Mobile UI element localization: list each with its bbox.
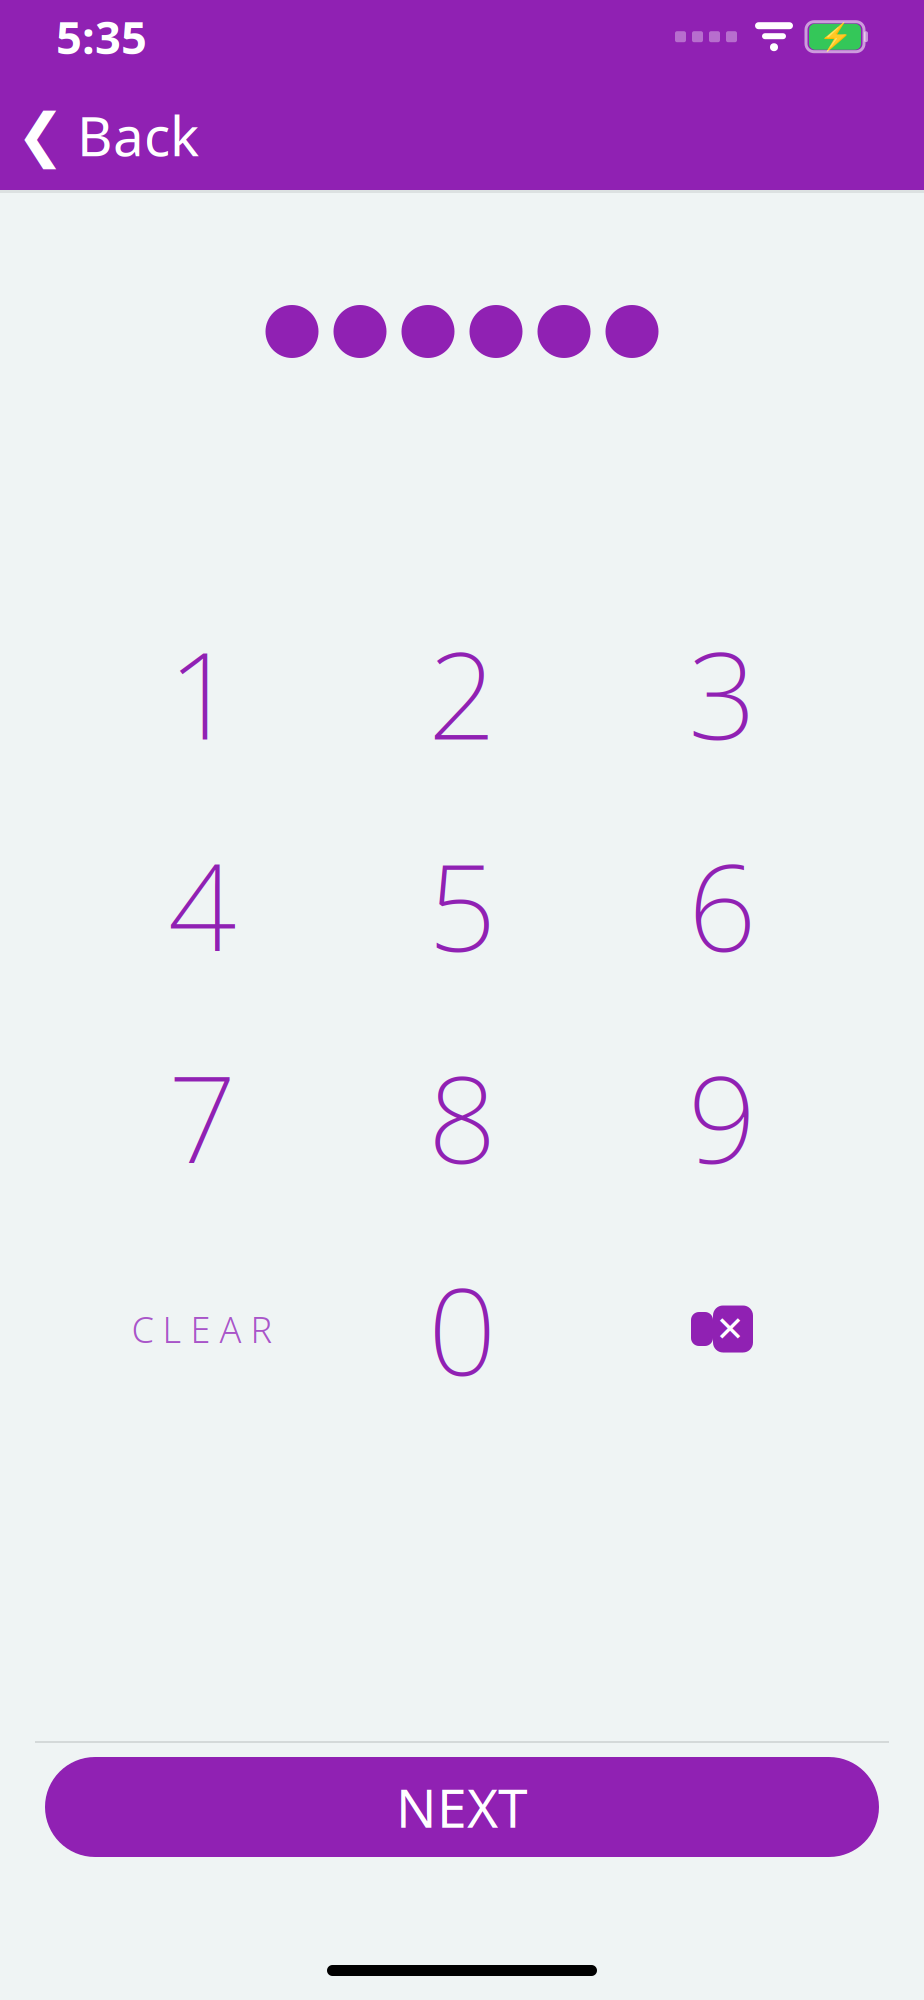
button[interactable]: 6 (592, 799, 852, 1011)
staticText: ❮ (16, 102, 65, 168)
staticText: 5:35 (56, 7, 147, 67)
button[interactable]: NEXT (45, 1757, 879, 1857)
button[interactable]: ❮ (0, 91, 223, 179)
staticText: 8 (428, 1037, 496, 1197)
staticText: 4 (168, 825, 236, 985)
button[interactable]: 3 (592, 587, 852, 799)
staticText: 7 (168, 1037, 236, 1197)
staticText: 3 (688, 613, 756, 773)
staticText: 1 (168, 613, 236, 773)
button[interactable]: 1 (72, 587, 332, 799)
staticText: 5 (428, 825, 496, 985)
staticText: Back (77, 99, 199, 171)
button[interactable]: 0 (332, 1223, 592, 1435)
staticText: 0 (428, 1249, 496, 1409)
button[interactable]: 4 (72, 799, 332, 1011)
button[interactable]: 7 (72, 1011, 332, 1223)
staticText: 9 (688, 1037, 756, 1197)
staticText: 2 (428, 613, 496, 773)
button[interactable]: 2 (332, 587, 592, 799)
staticText: ⚡ (818, 21, 851, 52)
button[interactable]: 8 (332, 1011, 592, 1223)
staticText: ✕ (715, 1309, 744, 1349)
button[interactable]: Delete (592, 1223, 852, 1435)
button[interactable]: 5 (332, 799, 592, 1011)
staticText: 6 (688, 825, 756, 985)
button[interactable]: 9 (592, 1011, 852, 1223)
staticText: NEXT (396, 1772, 528, 1842)
staticText: C L E A R (131, 1305, 272, 1353)
button[interactable]: C L E A R (72, 1223, 332, 1435)
